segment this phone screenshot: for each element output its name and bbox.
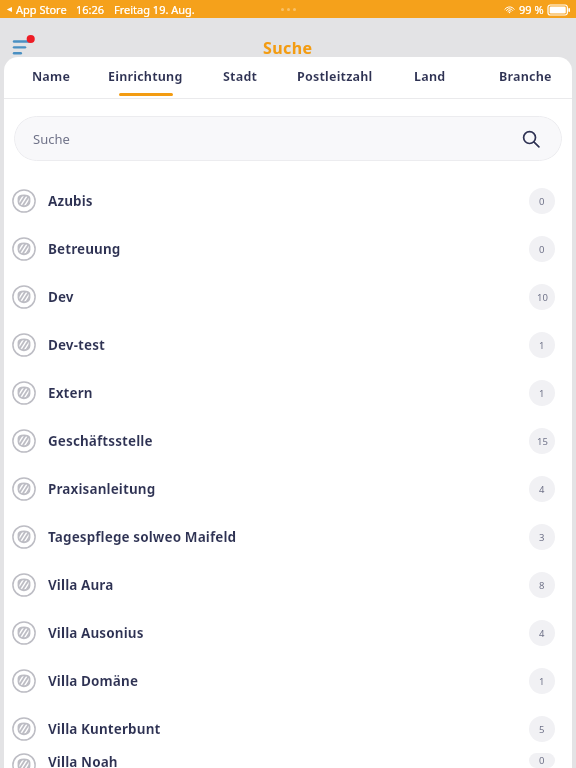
staticText: Freitag 19. Aug.	[114, 2, 195, 17]
staticText: Villa Kunterbunt	[48, 720, 161, 738]
button[interactable]: Geschäftsstelle	[4, 417, 572, 465]
button[interactable]: Stadt	[192, 57, 287, 98]
staticText: Betreuung	[48, 240, 121, 258]
button[interactable]: Name	[4, 57, 98, 98]
button[interactable]: Villa Ausonius	[4, 609, 572, 657]
button[interactable]: Filter	[4, 27, 44, 67]
button[interactable]: Azubis	[4, 177, 572, 225]
button[interactable]: Einrichtung	[98, 57, 192, 98]
staticText: Suche	[33, 130, 70, 148]
button[interactable]: Villa Noah	[4, 753, 572, 768]
staticText: 1	[539, 339, 545, 352]
staticText: Name	[32, 68, 71, 85]
button[interactable]: Villa Domäne	[4, 657, 572, 705]
button[interactable]: Land	[382, 57, 477, 98]
staticText: 10	[537, 291, 548, 304]
staticText: Postleitzahl	[297, 68, 373, 85]
staticText: Villa Ausonius	[48, 624, 144, 642]
staticText: 15	[537, 435, 548, 448]
button[interactable]: Suche	[14, 116, 562, 161]
staticText: 5	[539, 723, 545, 736]
staticText: Branche	[499, 68, 552, 85]
staticText: Extern	[48, 384, 93, 402]
staticText: Villa Aura	[48, 576, 114, 594]
staticText: 1	[539, 387, 545, 400]
staticText: 0	[539, 243, 545, 256]
staticText: 1	[539, 675, 545, 688]
staticText: 16:26	[76, 2, 105, 17]
staticText: Land	[414, 68, 446, 85]
staticText: Villa Noah	[48, 753, 118, 768]
staticText: 3	[539, 531, 545, 544]
staticText: Dev-test	[48, 336, 106, 354]
button[interactable]: Branche	[477, 57, 572, 98]
staticText: 0	[539, 754, 545, 767]
staticText: Suche	[263, 37, 313, 59]
button[interactable]: Villa Kunterbunt	[4, 705, 572, 753]
button[interactable]: Dev	[4, 273, 572, 321]
staticText: Praxisanleitung	[48, 480, 156, 498]
staticText: 8	[539, 579, 545, 592]
staticText: 0	[539, 195, 545, 208]
staticText: 99 %	[519, 2, 544, 17]
staticText: 4	[539, 483, 545, 496]
staticText: Geschäftsstelle	[48, 432, 153, 450]
staticText: Tagespflege solweo Maifeld	[48, 528, 237, 546]
button[interactable]: Tagespflege solweo Maifeld	[4, 513, 572, 561]
staticText: Azubis	[48, 192, 93, 210]
button[interactable]: Dev-test	[4, 321, 572, 369]
button[interactable]: Praxisanleitung	[4, 465, 572, 513]
button[interactable]: Villa Aura	[4, 561, 572, 609]
staticText: Villa Domäne	[48, 672, 139, 690]
staticText: Dev	[48, 288, 74, 306]
staticText: 4	[539, 627, 545, 640]
button[interactable]: Extern	[4, 369, 572, 417]
button[interactable]: Postleitzahl	[287, 57, 382, 98]
staticText: App Store	[16, 2, 67, 17]
staticText: Stadt	[223, 68, 258, 85]
staticText: Einrichtung	[108, 68, 183, 85]
button[interactable]: Betreuung	[4, 225, 572, 273]
